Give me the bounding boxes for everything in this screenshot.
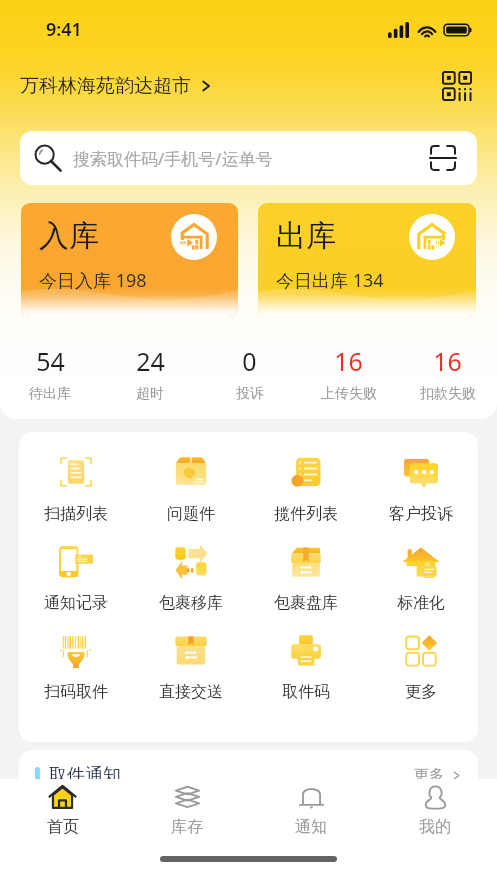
button[interactable]: 包裹盘库 (248, 534, 363, 623)
button[interactable]: 问题件 (133, 445, 248, 534)
button[interactable]: 通知记录 (19, 534, 133, 623)
button[interactable]: 搜索取件码/手机号/运单号 (20, 131, 477, 185)
staticText: 24 (136, 344, 165, 378)
staticText: 扫描列表 (44, 504, 108, 524)
button[interactable]: 首页 (0, 779, 125, 841)
staticText: 16 (433, 344, 462, 378)
staticText: 万科林海苑韵达超市 (20, 74, 191, 98)
staticText: 取件通知 (49, 764, 121, 787)
button[interactable]: 取件码 (248, 623, 363, 712)
staticText: 54 (36, 344, 65, 378)
staticText: 投诉 (236, 385, 264, 403)
staticText: 首页 (47, 817, 79, 837)
staticText: 库存 (171, 817, 203, 837)
staticText: 上传失败 (321, 385, 377, 403)
button[interactable]: 揽件列表 (248, 445, 363, 534)
staticText: 直接交送 (159, 682, 223, 702)
button[interactable]: 通知 (249, 779, 373, 841)
staticText: 今日出库 134 (276, 268, 384, 293)
staticText: 取件码 (282, 682, 330, 702)
staticText: 0 (242, 344, 257, 378)
button[interactable]: 包裹移库 (133, 534, 248, 623)
staticText: 9:41 (46, 17, 82, 42)
button[interactable]: 16 (299, 344, 398, 403)
staticText: 扫码取件 (44, 682, 108, 702)
staticText: 超时 (136, 385, 164, 403)
button[interactable]: 库存 (125, 779, 249, 841)
staticText: 入库 (39, 217, 99, 255)
button[interactable]: 扫一扫 (430, 145, 456, 171)
staticText: 通知 (295, 817, 327, 837)
staticText: 包裹移库 (159, 593, 223, 613)
button[interactable]: 入库 (21, 203, 238, 317)
button[interactable]: 万科林海苑韵达超市 (20, 74, 213, 98)
button[interactable]: 标准化 (363, 534, 478, 623)
staticText: 揽件列表 (274, 504, 338, 524)
button[interactable]: 0 (200, 344, 299, 403)
staticText: 16 (334, 344, 363, 378)
button[interactable]: 54 (0, 344, 100, 403)
staticText: 出库 (276, 217, 336, 255)
staticText: 待出库 (29, 385, 71, 403)
staticText: 今日入库 198 (39, 268, 147, 293)
button[interactable]: 取件通知 (19, 750, 478, 810)
button[interactable]: 二维码 (440, 69, 474, 103)
staticText: 通知记录 (44, 593, 108, 613)
button[interactable]: 出库 (258, 203, 476, 317)
staticText: 更多 (414, 766, 444, 785)
staticText: 扣款失败 (420, 385, 476, 403)
button[interactable]: 直接交送 (133, 623, 248, 712)
staticText: 问题件 (167, 504, 215, 524)
staticText: 我的 (419, 817, 451, 837)
button[interactable]: 扫码取件 (19, 623, 133, 712)
button[interactable]: 扫描列表 (19, 445, 133, 534)
staticText: 标准化 (397, 593, 445, 613)
staticText: 搜索取件码/手机号/运单号 (73, 147, 273, 170)
staticText: 更多 (405, 682, 437, 702)
staticText: 客户投诉 (389, 504, 453, 524)
button[interactable]: 24 (100, 344, 200, 403)
button[interactable]: 更多 (363, 623, 478, 712)
button[interactable]: 客户投诉 (363, 445, 478, 534)
button[interactable]: 16 (398, 344, 497, 403)
staticText: 包裹盘库 (274, 593, 338, 613)
button[interactable]: 我的 (373, 779, 497, 841)
